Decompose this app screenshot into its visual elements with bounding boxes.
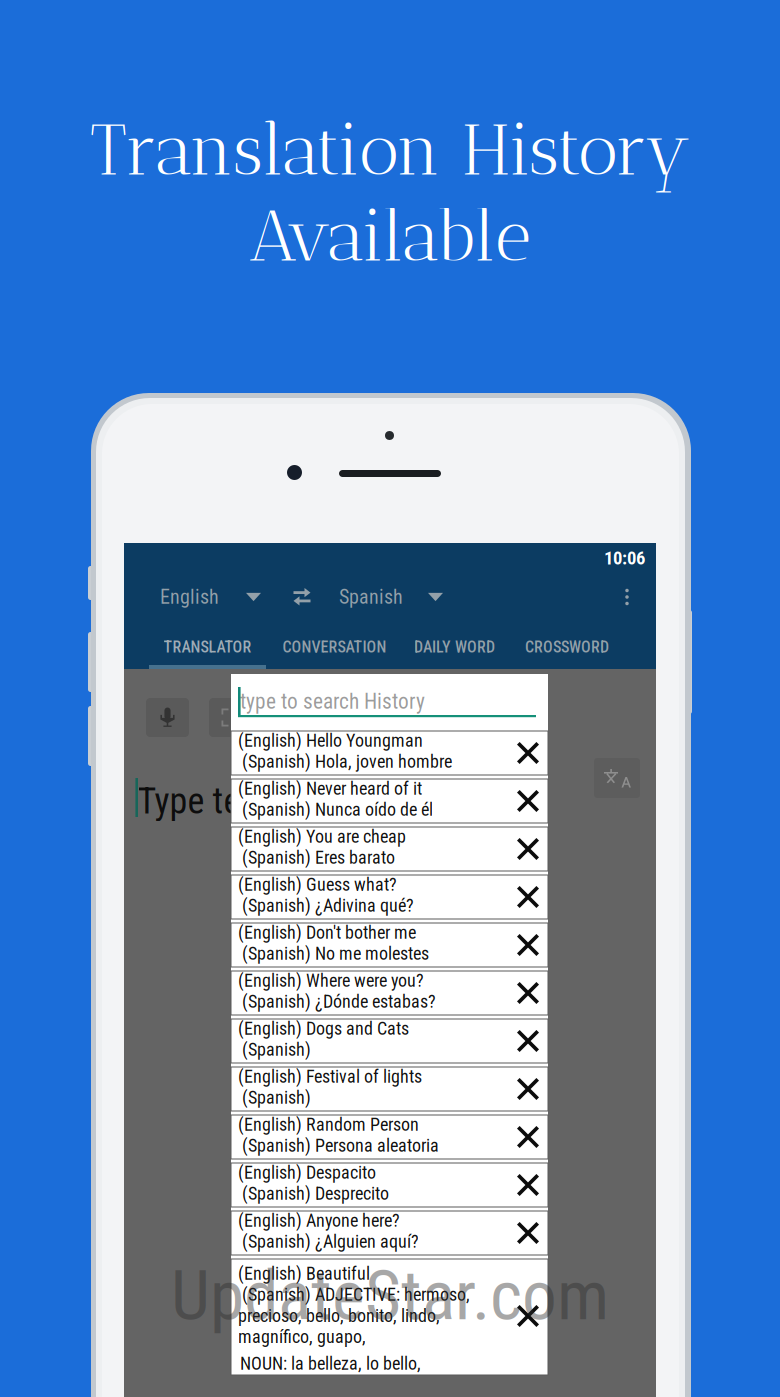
staticText: (English) Never heard of it — [238, 778, 422, 799]
staticText: English — [160, 585, 219, 609]
button[interactable]: (English) Never heard of it — [231, 779, 548, 823]
button[interactable]: Translate — [594, 758, 640, 798]
staticText: (English) Random Person — [238, 1114, 419, 1135]
staticText: (Spanish) Eres barato — [238, 847, 395, 868]
staticText: NOUN: la belleza, lo bello, — [240, 1353, 421, 1374]
staticText: (English) Festival of lights — [238, 1066, 422, 1087]
staticText: (English) Beautiful — [238, 1263, 370, 1284]
staticText: (English) Hello Youngman — [238, 730, 423, 751]
staticText: Translation History — [90, 108, 690, 192]
button[interactable]: English — [160, 577, 261, 617]
button[interactable]: (English) You are cheap — [231, 827, 548, 871]
staticText: type to search History — [240, 689, 425, 714]
staticText: (Spanish) ¿Alguien aquí? — [238, 1231, 419, 1252]
staticText: (Spanish) Persona aleatoria — [238, 1135, 439, 1156]
button[interactable]: Swap languages — [287, 577, 317, 617]
staticText: Available — [249, 194, 531, 278]
staticText: 10:06 — [604, 547, 645, 569]
staticText: Spanish — [339, 585, 403, 609]
staticText: (Spanish) No me molestes — [238, 943, 429, 964]
button[interactable]: Spanish — [339, 577, 443, 617]
button[interactable]: (English) Don't bother me — [231, 923, 548, 967]
staticText: (English) Despacito — [238, 1162, 376, 1183]
staticText: (Spanish) ¿Dónde estabas? — [238, 991, 436, 1012]
staticText: (Spanish) — [238, 1039, 315, 1060]
button[interactable]: Camera input — [209, 698, 252, 737]
button[interactable]: (English) Festival of lights — [231, 1067, 548, 1111]
staticText: (English) Guess what? — [238, 874, 397, 895]
staticText: magnífico, guapo, — [238, 1326, 366, 1347]
button[interactable]: Voice input — [146, 698, 189, 737]
staticText: UpdateStar.com — [171, 1255, 609, 1336]
staticText: Type text — [137, 780, 267, 822]
staticText: (English) Don't bother me — [238, 922, 416, 943]
button[interactable]: (English) Anyone here? — [231, 1211, 548, 1255]
button[interactable]: DAILY WORD — [403, 630, 506, 664]
staticText: DAILY WORD — [414, 638, 495, 656]
button[interactable]: TRANSLATOR — [149, 630, 266, 664]
button[interactable]: (English) Where were you? — [231, 971, 548, 1015]
staticText: (Spanish) Nunca oído de él — [238, 799, 433, 820]
button[interactable]: (English) Guess what? — [231, 875, 548, 919]
staticText: (Spanish) ADJECTIVE: hermoso, — [238, 1284, 470, 1305]
button[interactable]: (English) Despacito — [231, 1163, 548, 1207]
staticText: TRANSLATOR — [163, 638, 251, 656]
staticText: (Spanish) Hola, joven hombre — [238, 751, 452, 772]
button[interactable]: (English) Dogs and Cats — [231, 1019, 548, 1063]
staticText: (Spanish) ¿Adivina qué? — [238, 895, 414, 916]
staticText: CONVERSATION — [282, 638, 386, 656]
staticText: (Spanish) — [238, 1087, 315, 1108]
button[interactable]: (English) Random Person — [231, 1115, 548, 1159]
staticText: (English) Dogs and Cats — [238, 1018, 409, 1039]
button[interactable]: (English) Beautiful — [231, 1259, 548, 1375]
button[interactable]: More options — [614, 577, 640, 617]
staticText: (Spanish) Desprecito — [238, 1183, 389, 1204]
button[interactable]: (English) Hello Youngman — [231, 731, 548, 775]
staticText: (English) Where were you? — [238, 970, 424, 991]
staticText: CROSSWORD — [525, 638, 609, 656]
staticText: (English) Anyone here? — [238, 1210, 400, 1231]
button[interactable]: CROSSWORD — [506, 630, 628, 664]
button[interactable]: CONVERSATION — [266, 630, 403, 664]
staticText: precioso, bello, bonito, lindo, — [238, 1305, 440, 1326]
staticText: (English) You are cheap — [238, 826, 406, 847]
